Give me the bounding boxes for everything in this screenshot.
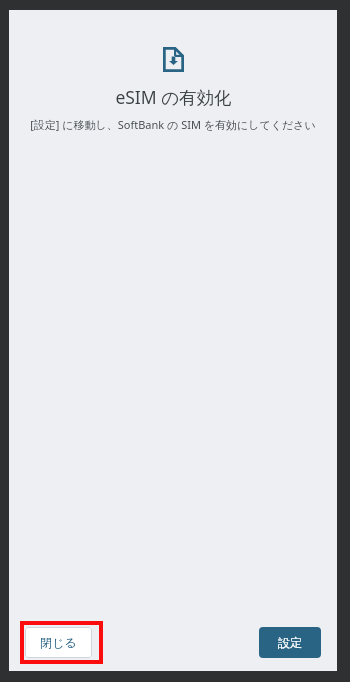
button[interactable]: 設定 bbox=[259, 627, 321, 658]
staticText: eSIM の有効化 bbox=[115, 85, 232, 109]
staticText: [設定] に移動し、SoftBank の SIM を有効にしてください bbox=[30, 117, 316, 132]
button[interactable]: 閉じる bbox=[25, 627, 92, 658]
staticText: 設定 bbox=[278, 635, 302, 650]
staticText: 閉じる bbox=[40, 635, 77, 650]
